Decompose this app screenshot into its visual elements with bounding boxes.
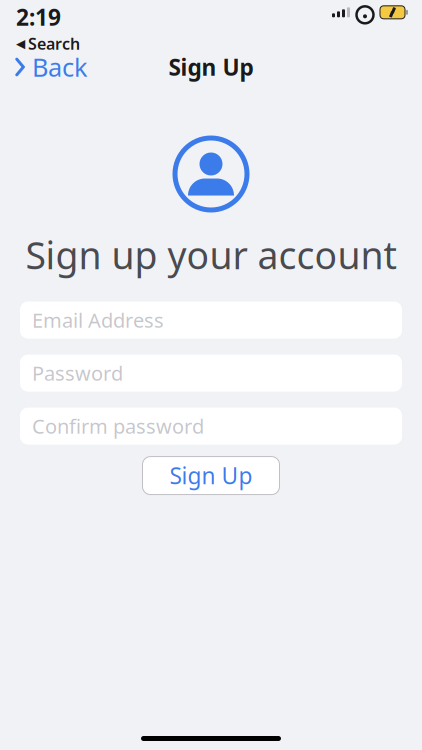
staticText: Password — [32, 360, 123, 386]
staticText: Sign Up — [168, 52, 253, 82]
button[interactable]: Back — [4, 44, 98, 90]
staticText: ◀ — [16, 37, 25, 50]
staticText: 2:19 — [16, 2, 61, 32]
staticText: Sign Up — [169, 460, 252, 491]
button[interactable]: Sign Up — [142, 457, 279, 495]
staticText: Search — [28, 33, 80, 54]
staticText: Email Address — [32, 307, 164, 333]
staticText: Sign up your account — [25, 230, 396, 280]
staticText: Back — [32, 50, 88, 84]
staticText: Confirm password — [32, 413, 204, 439]
